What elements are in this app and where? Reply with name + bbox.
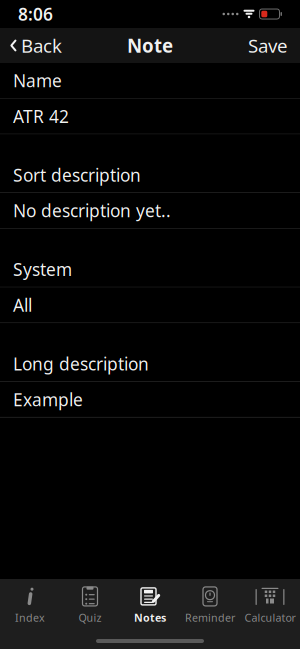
staticText: Notes <box>134 610 166 625</box>
staticText: Save <box>248 33 288 58</box>
staticText: Reminder <box>185 610 235 625</box>
button[interactable]: Sort description <box>0 157 300 192</box>
staticText: Calculator <box>244 610 295 625</box>
staticText: Index <box>15 610 45 625</box>
staticText: Sort description <box>13 163 141 186</box>
staticText: Long description <box>13 352 149 375</box>
staticText: Back <box>21 33 62 58</box>
button[interactable]: Reminder <box>180 585 240 625</box>
button[interactable]: Calculator <box>240 585 300 625</box>
staticText: ATR 42 <box>13 105 69 128</box>
button[interactable]: Example <box>0 382 300 417</box>
button[interactable]: Name <box>0 63 300 98</box>
button[interactable]: Save <box>236 28 300 63</box>
staticText: Note <box>127 33 173 58</box>
staticText: Name <box>13 69 62 92</box>
button[interactable]: All <box>0 287 300 322</box>
staticText: Example <box>13 388 83 411</box>
staticText: No description yet.. <box>13 199 171 222</box>
button[interactable]: No description yet.. <box>0 193 300 228</box>
button[interactable]: System <box>0 252 300 287</box>
button[interactable]: Index <box>0 585 60 625</box>
staticText: System <box>13 258 72 281</box>
button[interactable]: Notes <box>120 585 180 625</box>
button[interactable]: ATR 42 <box>0 99 300 134</box>
button[interactable]: Quiz <box>60 585 120 625</box>
staticText: Quiz <box>78 610 101 625</box>
button[interactable]: Long description <box>0 346 300 381</box>
staticText: All <box>13 293 32 316</box>
staticText: 8:06 <box>18 2 53 25</box>
button[interactable]: Back <box>0 28 71 63</box>
